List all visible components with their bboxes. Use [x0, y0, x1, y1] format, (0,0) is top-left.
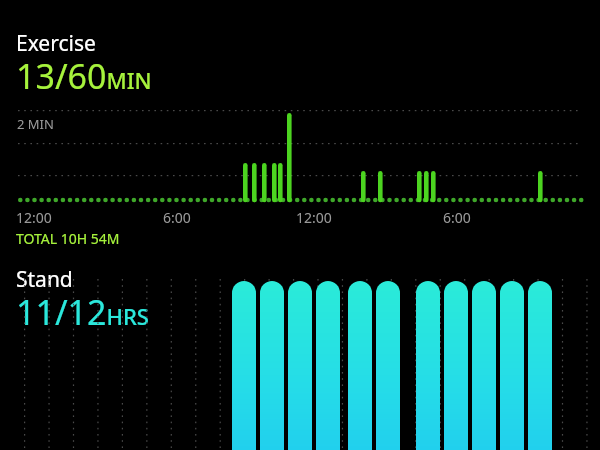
staticText: 6:00 — [443, 208, 471, 227]
staticText: Exercise — [16, 29, 96, 58]
staticText: 12:00 — [16, 208, 52, 227]
staticText: 2 MIN — [17, 115, 54, 133]
staticText: 6:00 — [163, 208, 191, 227]
staticText: 12:00 — [296, 208, 332, 227]
staticText: TOTAL 10H 54M — [16, 229, 120, 248]
staticText: 13/60MIN — [16, 53, 152, 99]
button[interactable]: Stand 11 of 12 hours — [0, 255, 600, 450]
button[interactable]: Exercise 13 of 60 minutes — [0, 0, 600, 255]
staticText: 11/12HRS — [16, 289, 149, 335]
staticText: Stand — [16, 265, 73, 294]
